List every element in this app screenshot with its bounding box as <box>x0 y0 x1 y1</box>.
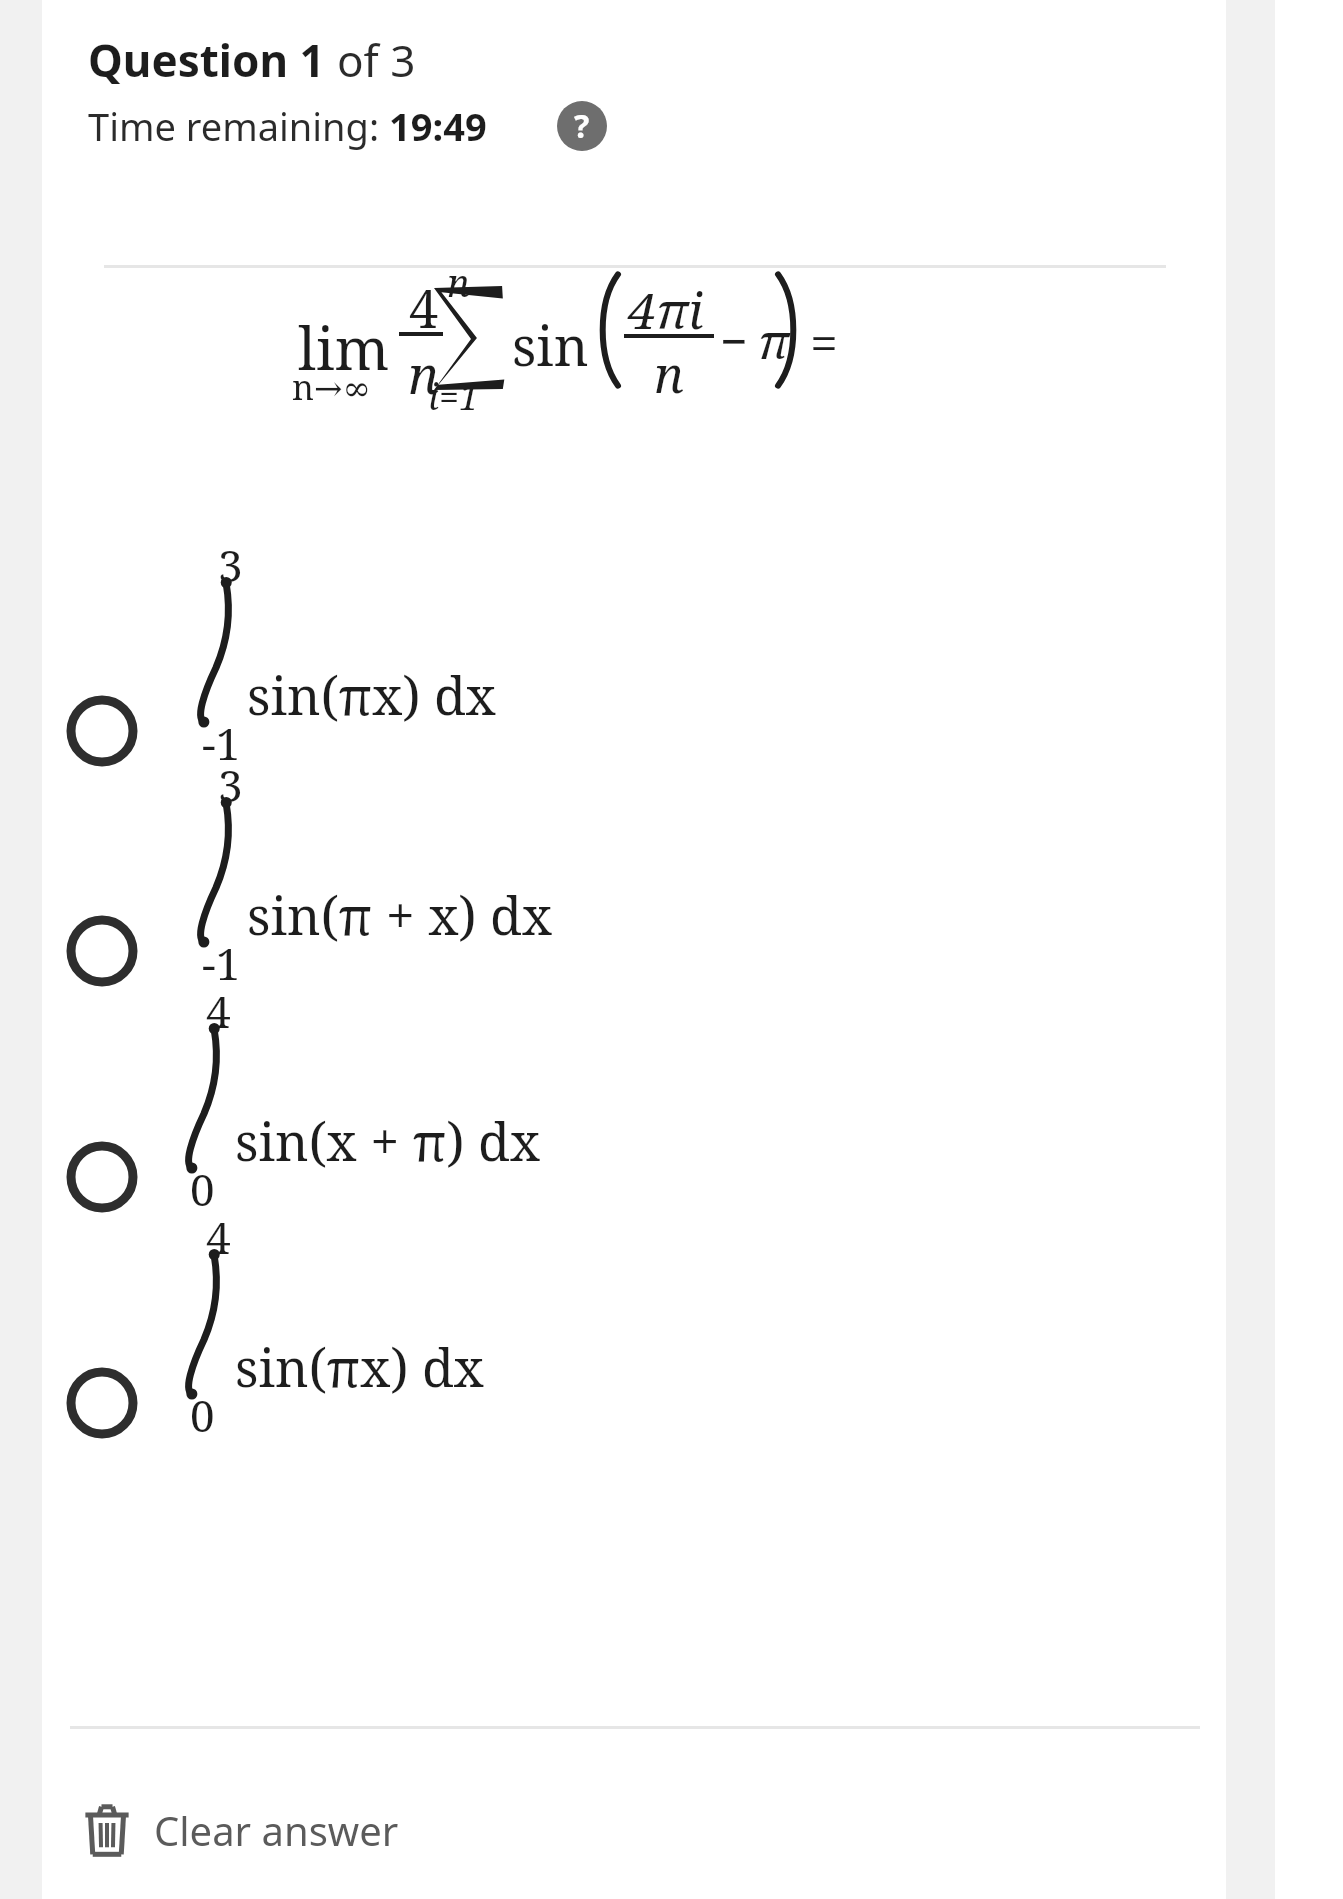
staticText: 3 <box>218 755 243 815</box>
staticText: 0 <box>190 1159 215 1219</box>
button[interactable]: Option A <box>42 686 1226 896</box>
staticText: 4 <box>206 981 231 1041</box>
button[interactable]: Option C <box>42 1132 1226 1342</box>
staticText: 4πi <box>628 276 704 344</box>
button[interactable]: Option D <box>42 1358 1226 1568</box>
button[interactable]: Option B <box>42 906 1226 1116</box>
staticText: sin(π + x) dx <box>247 879 552 950</box>
button[interactable]: Help <box>557 101 607 151</box>
staticText: n→∞ <box>292 364 371 410</box>
staticText: = <box>810 308 838 376</box>
staticText: ? <box>574 104 590 148</box>
staticText: sin(πx) dx <box>247 659 496 730</box>
staticText: 4 <box>409 272 439 343</box>
staticText: Question 1 <box>88 30 325 90</box>
staticText: 4 <box>206 1207 231 1267</box>
staticText: lim <box>298 308 390 387</box>
staticText: sin(πx) dx <box>235 1331 484 1402</box>
staticText: 19:49 <box>389 100 487 152</box>
staticText: − <box>720 308 748 373</box>
button[interactable]: Clear answer <box>70 1795 413 1865</box>
staticText: of 3 <box>337 30 416 90</box>
staticText: -1 <box>202 933 241 993</box>
staticText: n <box>408 338 440 409</box>
staticText: i=1 <box>428 372 480 421</box>
staticText: 3 <box>218 535 243 595</box>
staticText: n <box>447 256 470 308</box>
staticText: Time remaining: <box>88 100 389 152</box>
staticText: Clear answer <box>154 1803 399 1857</box>
staticText: 0 <box>190 1385 215 1445</box>
staticText: sin <box>512 308 589 382</box>
staticText: -1 <box>202 713 241 773</box>
staticText: π <box>758 308 790 373</box>
staticText: n <box>654 340 684 408</box>
staticText: sin(x + π) dx <box>235 1105 540 1176</box>
